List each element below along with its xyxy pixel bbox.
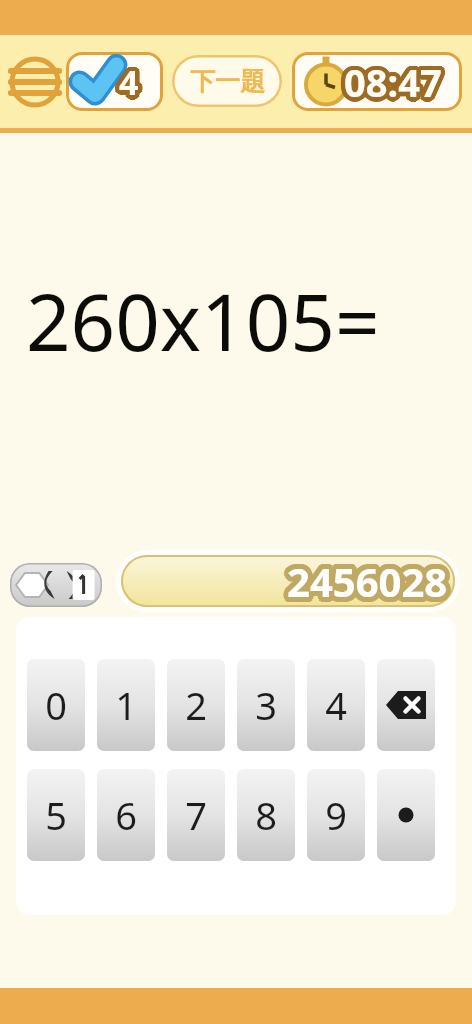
- button[interactable]: Backspace: [377, 659, 435, 751]
- staticText: 8: [255, 789, 277, 841]
- staticText: 7: [185, 789, 207, 841]
- button[interactable]: 7: [167, 769, 225, 861]
- button[interactable]: [377, 769, 435, 861]
- staticText: 下一題: [190, 66, 265, 97]
- button[interactable]: Swap input mode: [10, 563, 102, 607]
- button[interactable]: 6: [97, 769, 155, 861]
- staticText: 260x105=: [26, 268, 380, 374]
- button[interactable]: 2: [167, 659, 225, 751]
- button[interactable]: 5: [27, 769, 85, 861]
- button[interactable]: [66, 52, 163, 111]
- staticText: 4: [325, 679, 347, 731]
- button[interactable]: 下一題: [172, 55, 282, 107]
- staticText: 1: [115, 679, 137, 731]
- button[interactable]: Menu: [8, 55, 62, 109]
- staticText: 0: [45, 679, 67, 731]
- button[interactable]: 0: [27, 659, 85, 751]
- button[interactable]: 8: [237, 769, 295, 861]
- staticText: 2: [185, 679, 207, 731]
- staticText: 5: [45, 789, 67, 841]
- button[interactable]: [116, 550, 460, 612]
- staticText: 9: [325, 789, 347, 841]
- staticText: 6: [115, 789, 137, 841]
- button[interactable]: [292, 52, 462, 111]
- button[interactable]: 1: [97, 659, 155, 751]
- staticText: 3: [255, 679, 277, 731]
- button[interactable]: 9: [307, 769, 365, 861]
- button[interactable]: 3: [237, 659, 295, 751]
- button[interactable]: 4: [307, 659, 365, 751]
